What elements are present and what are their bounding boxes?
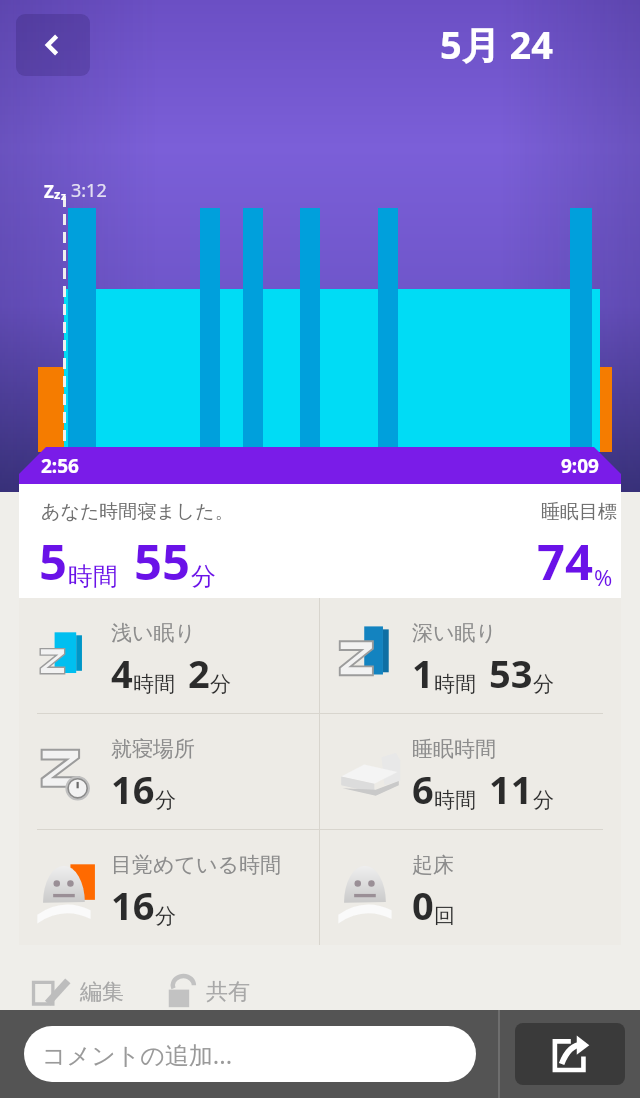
staticText: 16 bbox=[111, 763, 155, 815]
staticText: 分 bbox=[210, 671, 231, 697]
button[interactable]: Share bbox=[515, 1023, 625, 1085]
staticText: 時間 bbox=[434, 787, 476, 813]
staticText: 回 bbox=[434, 903, 455, 929]
staticText: 就寝場所 bbox=[111, 736, 195, 762]
staticText: あなた時間寝ました。 bbox=[41, 500, 234, 524]
staticText: 5 bbox=[39, 528, 68, 595]
staticText: % bbox=[594, 562, 613, 592]
staticText: 共有 bbox=[206, 978, 250, 1006]
staticText: 目覚めている時間 bbox=[111, 852, 281, 878]
staticText: 時間 bbox=[434, 671, 476, 697]
staticText: 時間 bbox=[68, 561, 118, 592]
staticText: 9:09 bbox=[561, 453, 599, 479]
staticText: 分 bbox=[533, 671, 554, 697]
staticText: 睡眠目標 bbox=[541, 500, 617, 524]
staticText: z bbox=[61, 189, 66, 203]
staticText: 5月 24 bbox=[440, 18, 554, 70]
staticText: 11 bbox=[489, 763, 533, 815]
button[interactable]: Back bbox=[16, 14, 90, 76]
button[interactable]: 編集 bbox=[30, 972, 124, 1012]
button[interactable]: 浅い眠り bbox=[19, 598, 319, 713]
staticText: 74 bbox=[537, 528, 594, 595]
button[interactable]: コメントの追加... bbox=[24, 1026, 476, 1082]
staticText: 分 bbox=[155, 903, 176, 929]
staticText: 編集 bbox=[80, 978, 124, 1006]
staticText: 分 bbox=[155, 787, 176, 813]
staticText: 起床 bbox=[412, 852, 454, 878]
button[interactable]: 目覚めている時間 bbox=[19, 830, 319, 945]
staticText: z bbox=[54, 185, 61, 203]
button[interactable]: 共有 bbox=[164, 972, 250, 1012]
staticText: 53 bbox=[489, 647, 533, 699]
staticText: 時間 bbox=[133, 671, 175, 697]
staticText: Z bbox=[44, 180, 54, 203]
staticText: 55 bbox=[134, 528, 191, 595]
staticText: 2:56 bbox=[41, 453, 79, 479]
button[interactable]: 深い眠り bbox=[320, 598, 621, 713]
staticText: 3:12 bbox=[71, 178, 107, 203]
button[interactable]: 睡眠時間 bbox=[320, 714, 621, 829]
staticText: 睡眠時間 bbox=[412, 736, 496, 762]
staticText: 0 bbox=[412, 879, 434, 931]
staticText: 2 bbox=[188, 647, 210, 699]
staticText: 浅い眠り bbox=[111, 620, 196, 646]
button[interactable]: 就寝場所 bbox=[19, 714, 319, 829]
staticText: 分 bbox=[533, 787, 554, 813]
staticText: 深い眠り bbox=[412, 620, 497, 646]
staticText: 6 bbox=[412, 763, 434, 815]
staticText: コメントの追加... bbox=[42, 1038, 233, 1071]
staticText: 分 bbox=[191, 561, 216, 592]
staticText: 1 bbox=[412, 647, 434, 699]
button[interactable]: 起床 bbox=[320, 830, 621, 945]
staticText: 16 bbox=[111, 879, 155, 931]
staticText: 4 bbox=[111, 647, 133, 699]
